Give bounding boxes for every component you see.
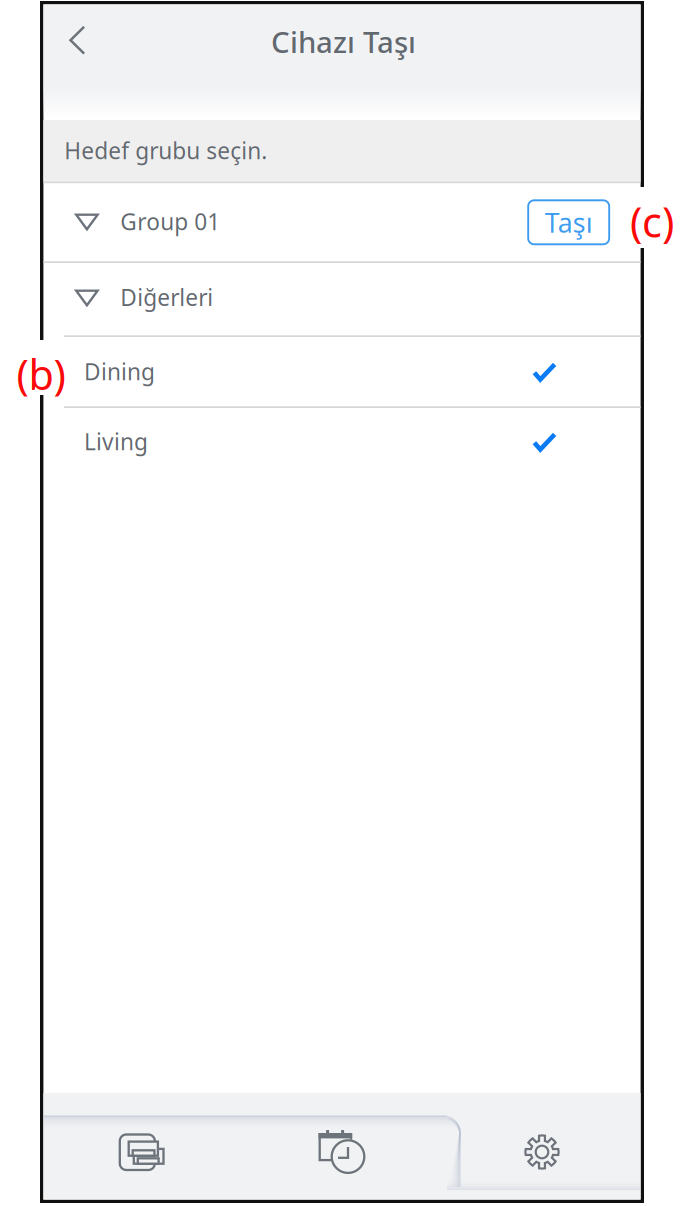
staticText: (b) xyxy=(16,347,65,401)
button[interactable]: Devices xyxy=(56,1099,226,1205)
staticText: Taşı xyxy=(545,205,593,240)
button[interactable]: Taşı xyxy=(528,200,609,244)
staticText: Group 01 xyxy=(120,206,220,236)
staticText: (c) xyxy=(630,194,674,249)
button[interactable]: Living xyxy=(43,408,641,479)
button[interactable]: Back xyxy=(42,5,112,75)
staticText: Dining xyxy=(84,356,155,386)
staticText: Living xyxy=(84,426,148,456)
button[interactable]: Schedule xyxy=(257,1099,427,1205)
button[interactable]: Group 01 xyxy=(43,182,641,262)
button[interactable]: Settings xyxy=(457,1099,627,1205)
button[interactable]: Diğerleri xyxy=(43,263,641,337)
staticText: Hedef grubu seçin. xyxy=(64,135,267,165)
button[interactable]: Dining xyxy=(43,337,641,408)
staticText: Diğerleri xyxy=(120,282,213,312)
staticText: Cihazı Taşı xyxy=(271,22,416,61)
